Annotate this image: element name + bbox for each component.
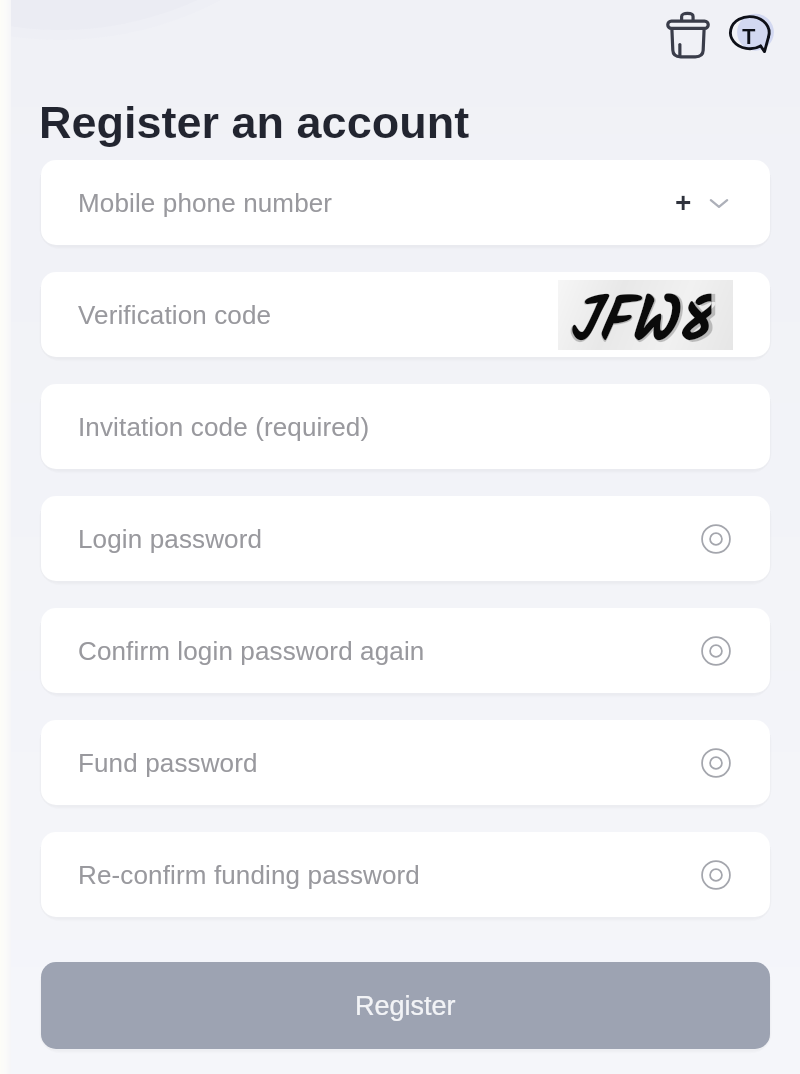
button[interactable]: Mobile phone number [41,160,770,245]
staticText: T [742,24,756,49]
staticText: Login password [78,524,263,553]
button[interactable]: Re-confirm funding password [41,832,770,917]
staticText: Mobile phone number [78,188,333,217]
staticText: JFW8 [569,272,711,349]
staticText: + [675,187,692,218]
button[interactable]: Register [41,962,770,1049]
staticText: Confirm login password again [78,636,425,665]
staticText: JFW8 [567,272,715,352]
button[interactable]: Customer service [658,0,718,70]
staticText: Register an account [39,97,470,147]
staticText: Re-confirm funding password [78,860,420,889]
button[interactable]: Login password [41,496,770,581]
staticText: Invitation code (required) [78,412,370,441]
button[interactable]: Fund password [41,720,770,805]
button[interactable]: Invitation code (required) [41,384,770,469]
button[interactable]: Verification code [41,272,770,357]
button[interactable]: Confirm login password again [41,608,770,693]
staticText: Register [355,991,456,1021]
staticText: Verification code [78,300,272,329]
button[interactable]: Language [718,0,778,70]
staticText: Fund password [78,748,258,777]
button[interactable]: Refresh verification code [558,280,733,350]
